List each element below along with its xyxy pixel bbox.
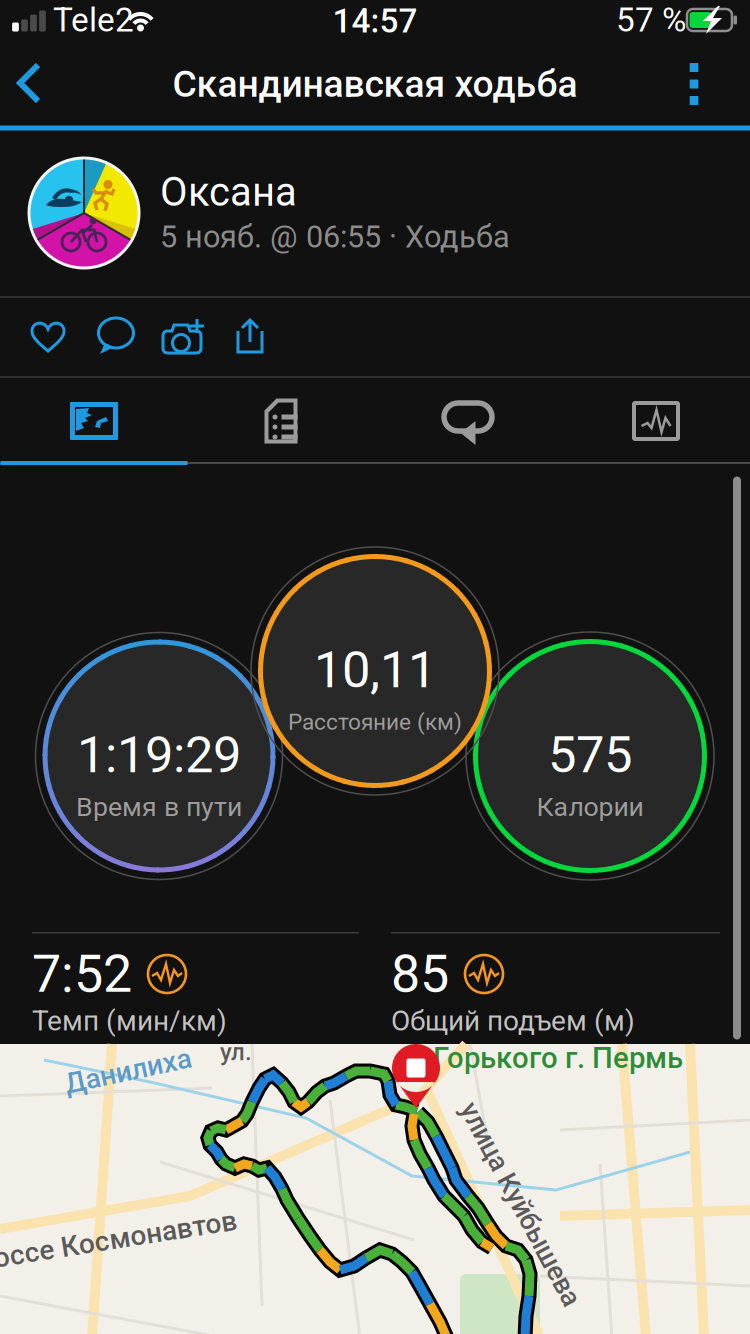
staticText: Темп (мин/км) <box>32 1005 227 1037</box>
button[interactable]: More options <box>658 40 730 128</box>
staticText: Расстояние (км) <box>288 709 462 735</box>
staticText: Данилиха <box>63 1055 192 1087</box>
staticText: 85 <box>391 943 449 1004</box>
staticText: Общий подъем (м) <box>391 1005 635 1037</box>
button[interactable]: Like <box>15 303 81 369</box>
button[interactable]: Map <box>0 379 187 463</box>
staticText: 5 нояб. @ 06:55 · Ходьба <box>160 219 510 255</box>
staticText: 575 <box>548 725 632 785</box>
button[interactable]: Comment <box>83 303 149 369</box>
staticText: шоссе Космонавтов <box>0 1225 238 1257</box>
staticText: ул. <box>220 1038 252 1066</box>
staticText: улица Куйбышева <box>407 1188 633 1220</box>
staticText: Скандинавская ходьба <box>172 62 577 106</box>
staticText: 1:19:29 <box>77 725 241 785</box>
staticText: 14:57 <box>332 1 417 41</box>
button[interactable]: Add photo <box>151 303 217 369</box>
staticText: Оксана <box>160 169 297 215</box>
button[interactable]: Back <box>0 40 74 128</box>
staticText: Калории <box>536 791 643 823</box>
staticText: 10,11 <box>314 640 436 700</box>
button[interactable]: Laps <box>374 379 561 463</box>
staticText: Время в пути <box>76 791 242 823</box>
button[interactable]: Share <box>217 303 283 369</box>
button[interactable]: Details <box>187 379 374 463</box>
button[interactable]: Charts <box>562 379 749 463</box>
staticText: 57 % <box>616 0 686 40</box>
staticText: Tele2 <box>53 0 134 40</box>
staticText: Горького г. Пермь <box>433 1041 683 1075</box>
staticText: 7:52 <box>32 943 132 1004</box>
